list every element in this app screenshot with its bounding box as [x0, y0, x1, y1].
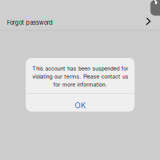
staticText: This account has been suspended for — [32, 65, 128, 72]
staticText: for more information. — [53, 81, 107, 88]
staticText: Forgot password — [7, 19, 53, 26]
staticText: violating our terms. Please contact us — [32, 73, 128, 80]
button[interactable]: OK — [26, 94, 134, 111]
staticText: OK — [75, 101, 86, 110]
button[interactable]: Forgot password — [0, 0, 160, 30]
button[interactable]: Popover — [150, 0, 160, 16]
